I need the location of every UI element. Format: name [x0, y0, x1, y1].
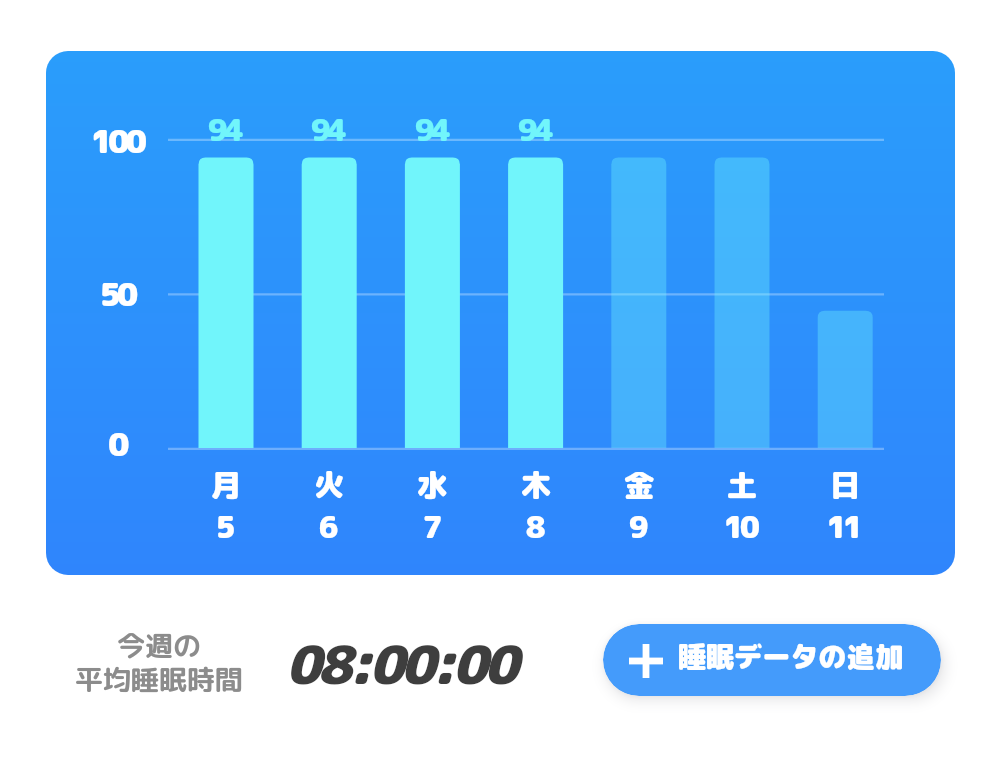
button[interactable]: 今週の睡眠スコアグラフ [46, 51, 955, 575]
staticText: 94 [371, 109, 491, 151]
staticText: 月 [166, 464, 286, 506]
staticText: 日 [785, 464, 905, 506]
staticText: 9 [577, 506, 697, 548]
staticText: 10 [680, 506, 800, 548]
staticText: 木 [476, 464, 596, 506]
staticText: 94 [267, 109, 387, 151]
staticText: 08:00:00 [286, 628, 515, 701]
staticText: 11 [783, 506, 903, 548]
staticText: 100 [57, 119, 177, 164]
staticText: 0 [57, 422, 177, 467]
staticText: 6 [267, 506, 387, 548]
staticText: 94 [474, 109, 594, 151]
staticText: 5 [164, 506, 284, 548]
staticText: 7 [371, 506, 491, 548]
staticText: 94 [164, 109, 284, 151]
staticText: 水 [372, 464, 492, 506]
staticText: 50 [57, 272, 177, 317]
staticText: 金 [579, 464, 699, 506]
staticText: 火 [269, 464, 389, 506]
staticText: 今週の 平均睡眠時間 [59, 626, 259, 699]
staticText: 8 [474, 506, 594, 548]
staticText: 睡眠データの追加 [678, 637, 903, 676]
staticText: 土 [682, 464, 802, 506]
button[interactable]: Add [603, 624, 941, 696]
other: Add [629, 644, 663, 678]
